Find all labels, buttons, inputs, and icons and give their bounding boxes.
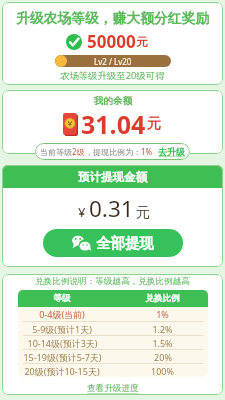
staticText: 50000	[87, 30, 136, 53]
staticText: Lv2 / Lv20	[94, 56, 132, 67]
staticText: 5-9级(预计1天)	[32, 323, 92, 335]
staticText: 升级农场等级，赚大额分红奖励	[16, 10, 210, 27]
staticText: 我的余额	[94, 95, 132, 107]
button[interactable]: 查看升级进度	[87, 383, 139, 394]
staticText: ，提现比例为：	[85, 147, 141, 157]
staticText: 1.5%	[152, 337, 173, 349]
staticText: 预计提现金额	[78, 170, 147, 184]
staticText: 15-19级(预计5-7天)	[23, 351, 102, 363]
staticText: 0-4级(当前)	[39, 308, 85, 320]
staticText: 2级	[72, 146, 85, 157]
staticText: 20%	[154, 351, 172, 363]
staticText: 100%	[151, 365, 174, 377]
staticText: 等级	[53, 293, 71, 304]
staticText: 元	[136, 204, 150, 222]
staticText: 1%	[156, 308, 169, 320]
staticText: 兑换比例	[145, 293, 180, 304]
other: WeChat	[72, 233, 92, 253]
staticText: 去升级	[158, 146, 185, 157]
staticText: 31.04	[81, 107, 146, 141]
staticText: 当前等级	[40, 147, 72, 157]
staticText: 20级(预计10-15天)	[24, 365, 100, 377]
staticText: 兑换比例说明：等级越高，兑换比例越高	[35, 276, 190, 287]
staticText: 0.31	[89, 193, 134, 224]
staticText: 农场等级升级至20级可得	[60, 69, 165, 82]
staticText: 1.2%	[152, 323, 173, 335]
staticText: 1%	[141, 146, 153, 157]
staticText: 元	[136, 35, 148, 49]
button[interactable]: WeChat	[43, 229, 183, 257]
staticText: 元	[147, 115, 161, 133]
staticText: 全部提现	[96, 234, 154, 252]
staticText: 10-14级(预计3天)	[27, 337, 98, 349]
staticText: ¥	[78, 203, 86, 221]
button[interactable]: 当前等级	[35, 143, 190, 160]
